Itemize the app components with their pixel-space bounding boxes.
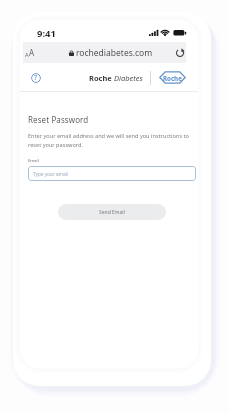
staticText: Send Email	[99, 209, 125, 216]
staticText: Roche	[89, 73, 112, 83]
staticText: Enter your email address and we will sen…	[28, 132, 196, 148]
staticText: Email	[28, 158, 39, 164]
staticText: rochediabetes.com	[76, 47, 153, 59]
button[interactable]: Type your email	[28, 166, 196, 181]
staticText: Roche	[163, 74, 182, 82]
staticText: A	[29, 47, 35, 58]
staticText: Type your email	[33, 171, 69, 177]
staticText: Diabetes	[114, 73, 143, 83]
staticText: Reset Password	[28, 114, 89, 125]
button[interactable]: Reload	[175, 48, 185, 58]
button[interactable]: Roche	[159, 71, 186, 84]
staticText: ?	[34, 73, 38, 83]
button[interactable]: Text size	[25, 47, 35, 58]
button[interactable]: Help	[31, 73, 41, 83]
staticText: 9:41	[37, 27, 56, 40]
staticText: A	[25, 51, 29, 58]
button[interactable]: Send Email	[58, 204, 166, 220]
